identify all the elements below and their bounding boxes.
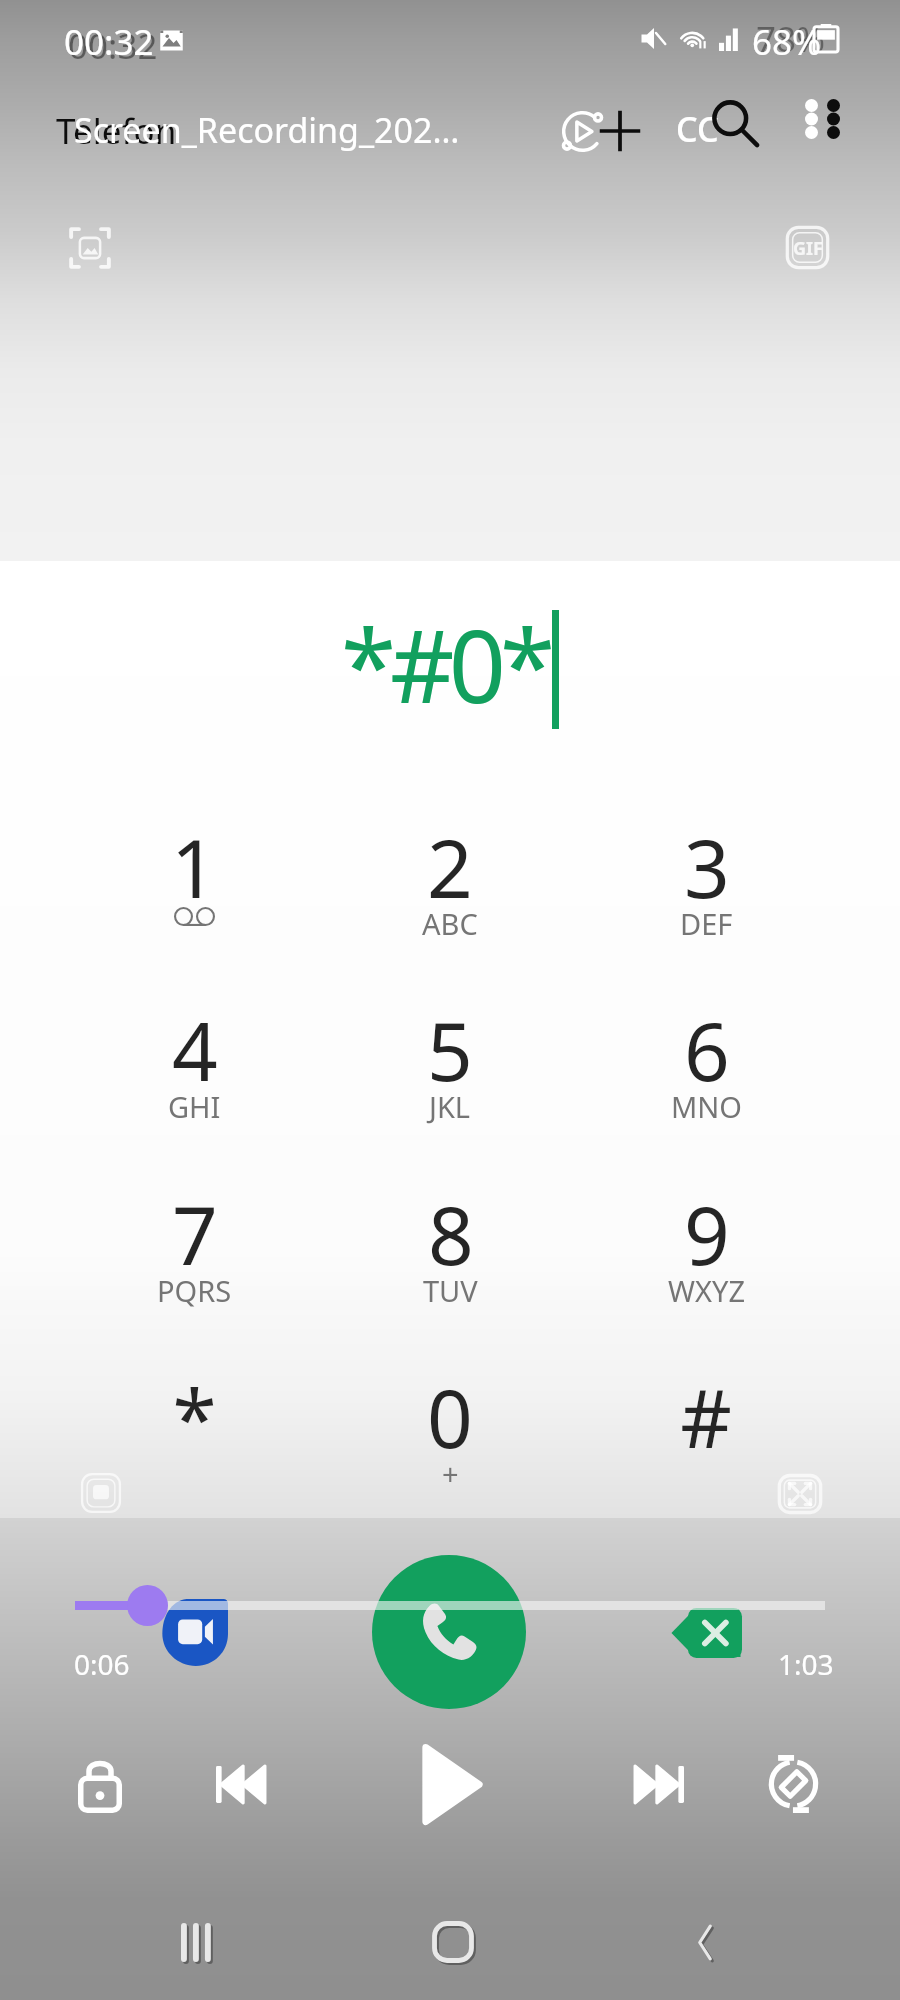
button[interactable]: Recents [160,1902,240,1982]
staticText: 8 [428,1179,474,1288]
staticText: 1:03 [778,1645,834,1683]
staticText: JKL [429,1087,471,1126]
staticText: 00:32 [64,18,154,66]
button[interactable]: 7 [66,1179,322,1359]
button[interactable]: # [578,1362,834,1542]
button[interactable]: 8 [322,1179,578,1359]
button[interactable]: Full screen [778,1472,822,1516]
staticText: 00:32 [68,22,158,70]
button[interactable]: * [66,1362,322,1542]
button[interactable]: 6 [578,995,834,1175]
button[interactable]: 3 [578,812,834,992]
staticText: 2 [427,812,473,921]
staticText: * [172,1362,217,1471]
staticText: 7 [172,1179,218,1288]
staticText: 4 [172,995,218,1104]
staticText: ABC [422,904,478,943]
staticText: MNO [671,1087,742,1126]
button[interactable]: Seek position [127,1585,168,1626]
button[interactable]: Capture screenshot [66,224,114,272]
button[interactable]: 2 [322,812,578,992]
staticText: 6 [684,995,730,1104]
button[interactable]: Back [665,1902,745,1982]
button[interactable]: Smart view [550,99,614,163]
button[interactable]: 0 [322,1362,578,1542]
button[interactable]: Add contact [588,99,652,163]
button[interactable]: Play [399,1724,506,1845]
staticText: 78% [756,15,826,63]
button[interactable]: 4 [66,995,322,1175]
button[interactable]: Next [615,1746,704,1823]
button[interactable]: 5 [322,995,578,1175]
button[interactable]: More [812,98,854,140]
staticText: 3 [684,812,730,921]
button[interactable]: Previous [196,1746,285,1823]
staticText: 5 [427,995,473,1104]
staticText: Screen_Recording_202… [74,107,460,153]
staticText: 1 [171,812,217,921]
staticText: DEF [680,904,733,943]
button[interactable]: Home [413,1902,493,1982]
staticText: *#0* [341,596,549,732]
button[interactable]: Lock [58,1735,142,1833]
button[interactable]: 1 [66,812,322,992]
staticText: 0 [427,1362,473,1471]
staticText: WXYZ [668,1271,745,1310]
staticText: # [680,1362,732,1471]
staticText: GHI [168,1087,221,1126]
button[interactable]: Search [704,92,768,156]
button[interactable]: 9 [578,1179,834,1359]
button[interactable]: Captions [668,94,726,164]
staticText: 9 [684,1179,730,1288]
staticText: PQRS [157,1271,232,1310]
staticText: GIF [793,236,823,261]
staticText: CC [676,106,719,152]
button[interactable]: Call [372,1555,526,1709]
button[interactable]: Backspace [670,1608,742,1658]
button[interactable]: Video call [161,1599,228,1666]
button[interactable]: Create GIF [786,226,829,269]
staticText: 68% [752,18,822,66]
staticText: TUV [423,1271,478,1310]
staticText: + [442,1454,459,1493]
button[interactable]: Rotate screen [746,1735,841,1833]
staticText: Telefon [56,107,177,155]
button[interactable]: Picture in picture [80,1472,122,1514]
staticText: 0:06 [74,1645,130,1683]
button[interactable]: More options [790,98,832,140]
